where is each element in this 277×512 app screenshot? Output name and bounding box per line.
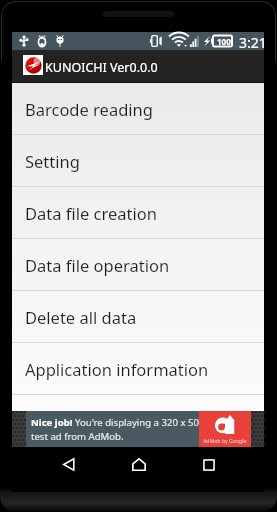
staticText: test ad from AdMob. [31, 430, 124, 443]
staticText: Nice job! You're displaying a 320 x 50 [31, 416, 199, 429]
staticText: KUNOICHI Ver0.0.0 [45, 59, 158, 76]
button[interactable]: Setting [12, 135, 264, 187]
staticText: 100 [217, 36, 231, 47]
staticText: Delete all data [25, 306, 137, 328]
button[interactable]: Data file operation [12, 239, 264, 291]
staticText: Setting [25, 150, 80, 172]
staticText: Application information [25, 358, 209, 380]
staticText: Barcode reading [25, 98, 153, 120]
button[interactable]: Barcode reading [12, 83, 264, 135]
button[interactable]: Application information [12, 343, 264, 395]
button[interactable]: Recent apps [195, 451, 222, 478]
staticText: Data file operation [25, 254, 170, 276]
staticText: Data file creation [25, 202, 157, 224]
button[interactable]: Delete all data [12, 291, 264, 343]
button[interactable]: Nice job! You're displaying a 320 x 50 [12, 411, 264, 447]
staticText: AdMob by Google [203, 437, 247, 444]
button[interactable]: Back [55, 451, 82, 478]
staticText: 3:21 [239, 33, 267, 51]
button[interactable]: Data file creation [12, 187, 264, 239]
button[interactable]: Home [125, 451, 152, 478]
